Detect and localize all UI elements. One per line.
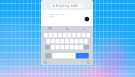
button[interactable]: Hi bbox=[59, 26, 75, 31]
button[interactable]: Dictation bbox=[87, 61, 90, 63]
staticText: Help me find a present for bbox=[48, 14, 65, 16]
staticText: × bbox=[80, 4, 82, 7]
staticText: shopping search bbox=[55, 4, 78, 7]
button[interactable]: I bbox=[75, 26, 92, 31]
button[interactable]: “hi” bbox=[42, 26, 58, 31]
staticText: Hi bbox=[65, 27, 68, 30]
button[interactable]: Emoji keyboard bbox=[44, 61, 47, 63]
staticText: “hi” bbox=[48, 27, 53, 30]
staticText: my sister bbox=[48, 16, 54, 18]
staticText: I bbox=[83, 27, 84, 30]
button[interactable]: shopping search bbox=[50, 4, 83, 8]
